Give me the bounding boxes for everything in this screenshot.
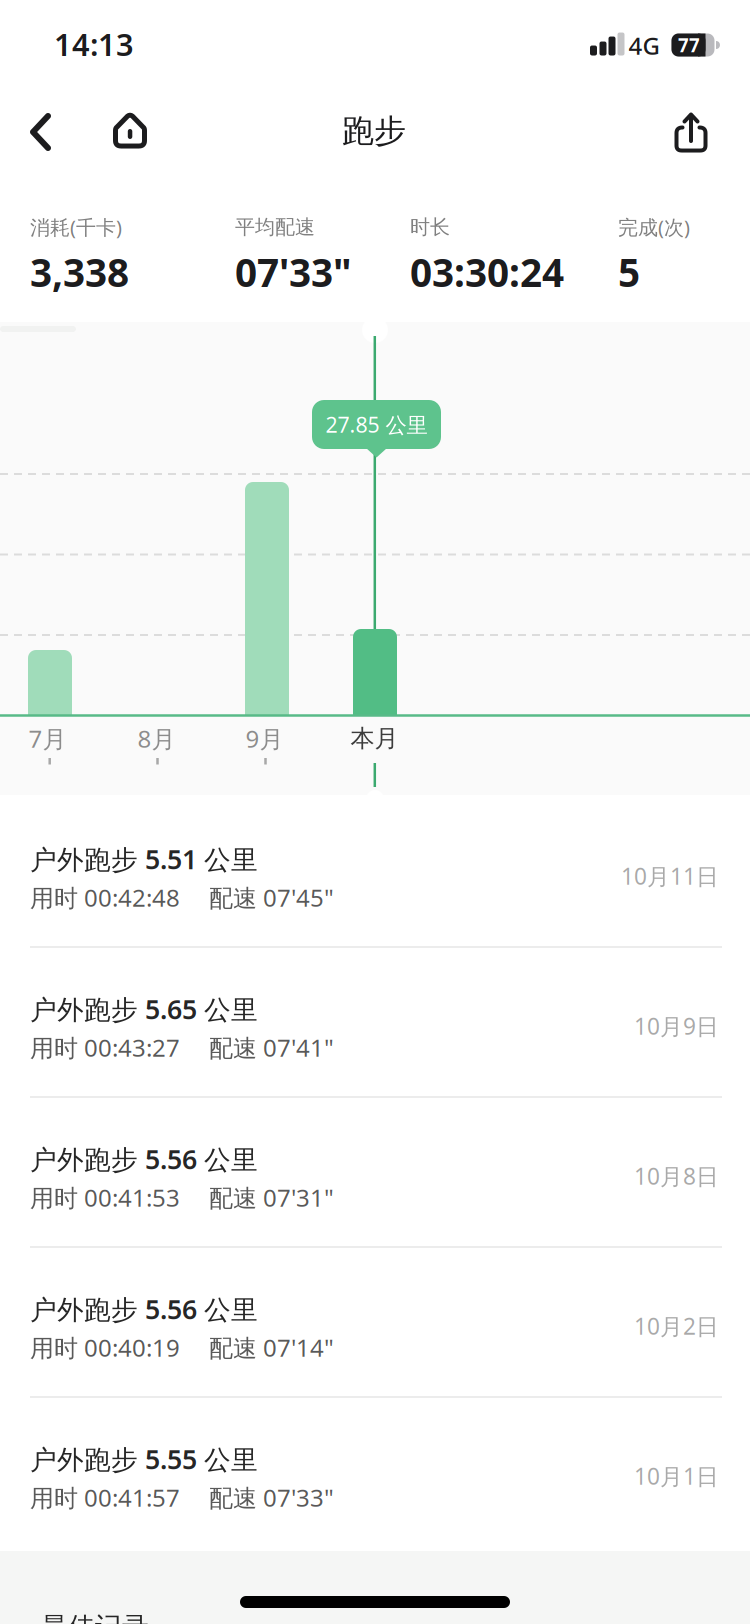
staticText: 8月 xyxy=(137,723,175,754)
staticText: 03:30:24 xyxy=(410,246,564,298)
staticText: 时长 xyxy=(410,215,450,239)
staticText: 3,338 xyxy=(30,246,129,298)
staticText: 户外跑步 5.56 公里 xyxy=(30,1291,258,1327)
button[interactable]: Back xyxy=(29,112,53,152)
staticText: 用时 00:43:27 xyxy=(30,1032,180,1063)
staticText: 10月1日 xyxy=(634,1461,719,1491)
button[interactable]: Home xyxy=(113,112,147,150)
staticText: 完成(次) xyxy=(618,214,690,240)
staticText: 10月9日 xyxy=(634,1011,719,1041)
staticText: 77 xyxy=(678,33,700,57)
button[interactable]: 户外跑步 5.65 公里 xyxy=(0,947,750,1097)
staticText: 7月 xyxy=(28,723,66,754)
staticText: 户外跑步 5.56 公里 xyxy=(30,1141,258,1177)
button[interactable]: 户外跑步 5.51 公里 xyxy=(0,797,750,947)
button[interactable]: Share xyxy=(673,111,709,153)
button[interactable]: 户外跑步 5.56 公里 xyxy=(0,1247,750,1397)
staticText: 10月2日 xyxy=(634,1311,719,1341)
staticText: 跑步 xyxy=(342,111,406,151)
staticText: 用时 00:41:57 xyxy=(30,1482,180,1513)
staticText: 户外跑步 5.51 公里 xyxy=(30,841,258,877)
staticText: 5 xyxy=(618,246,640,298)
staticText: 平均配速 xyxy=(235,215,315,239)
staticText: 用时 00:40:19 xyxy=(30,1332,180,1363)
staticText: 用时 00:41:53 xyxy=(30,1182,180,1213)
button[interactable]: 户外跑步 5.55 公里 xyxy=(0,1397,750,1547)
staticText: 配速 07'41" xyxy=(209,1032,334,1063)
staticText: 消耗(千卡) xyxy=(30,214,122,240)
staticText: 9月 xyxy=(245,723,283,754)
staticText: 用时 00:42:48 xyxy=(30,882,180,913)
staticText: 07'33" xyxy=(235,246,352,298)
staticText: 27.85 公里 xyxy=(325,410,427,439)
button[interactable]: 户外跑步 5.56 公里 xyxy=(0,1097,750,1247)
staticText: 10月11日 xyxy=(621,861,719,891)
staticText: 本月 xyxy=(350,724,398,753)
staticText: 户外跑步 5.65 公里 xyxy=(30,991,258,1027)
staticText: 最佳记录 xyxy=(41,1611,149,1624)
staticText: 配速 07'45" xyxy=(209,882,334,913)
staticText: 14:13 xyxy=(54,24,134,64)
staticText: 10月8日 xyxy=(634,1161,719,1191)
staticText: 配速 07'33" xyxy=(209,1482,334,1513)
staticText: 4G xyxy=(628,30,659,61)
staticText: 配速 07'14" xyxy=(209,1332,334,1363)
staticText: 配速 07'31" xyxy=(209,1182,334,1213)
staticText: 户外跑步 5.55 公里 xyxy=(30,1441,258,1477)
